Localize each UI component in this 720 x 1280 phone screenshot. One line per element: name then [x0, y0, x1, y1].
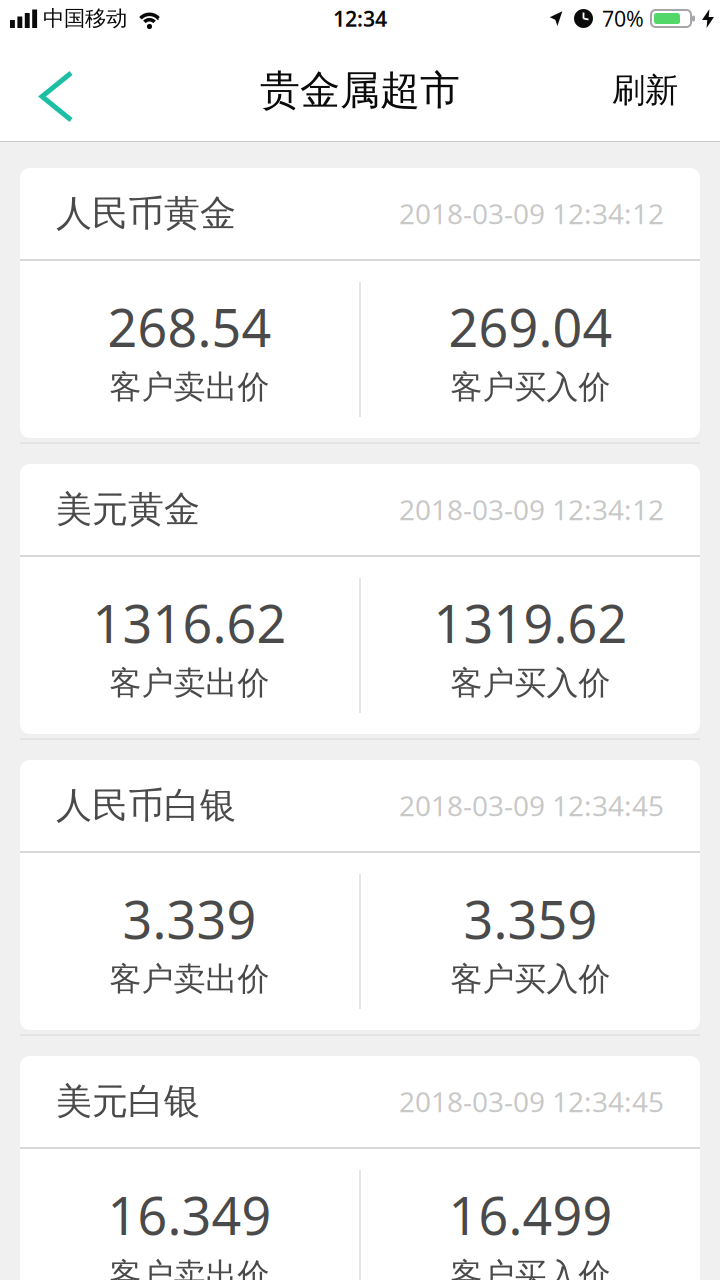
staticText: 2018-03-09 12:34:12 [399, 195, 664, 232]
staticText: 3.339 [122, 884, 256, 953]
staticText: 268.54 [107, 292, 271, 361]
staticText: 人民币黄金 [56, 191, 236, 236]
button[interactable]: 人民币黄金 [20, 168, 700, 438]
staticText: 刷新 [612, 70, 678, 111]
staticText: 客户卖出价 [109, 663, 269, 703]
button[interactable]: 美元黄金 [20, 464, 700, 734]
staticText: 1319.62 [433, 588, 627, 657]
staticText: 16.499 [448, 1180, 612, 1249]
staticText: 2018-03-09 12:34:45 [399, 1083, 664, 1120]
staticText: 12:34 [333, 4, 387, 33]
staticText: 269.04 [448, 292, 612, 361]
button[interactable]: 刷新 [592, 42, 720, 139]
staticText: 2018-03-09 12:34:45 [399, 787, 664, 824]
staticText: 客户买入价 [450, 367, 610, 407]
staticText: 美元黄金 [56, 487, 200, 532]
staticText: 客户卖出价 [109, 1255, 269, 1280]
staticText: 中国移动 [43, 5, 127, 32]
staticText: 美元白银 [56, 1079, 200, 1124]
button[interactable]: 人民币白银 [20, 760, 700, 1030]
staticText: 客户买入价 [450, 959, 610, 999]
staticText: 人民币白银 [56, 783, 236, 828]
staticText: 70% [602, 4, 644, 33]
staticText: 客户卖出价 [109, 959, 269, 999]
staticText: 客户买入价 [450, 1255, 610, 1280]
staticText: 1316.62 [92, 588, 286, 657]
staticText: 16.349 [107, 1180, 271, 1249]
staticText: 2018-03-09 12:34:12 [399, 491, 664, 528]
staticText: 贵金属超市 [260, 66, 460, 115]
staticText: 客户买入价 [450, 663, 610, 703]
staticText: 3.359 [463, 884, 597, 953]
staticText: 客户卖出价 [109, 367, 269, 407]
button[interactable]: 美元白银 [20, 1056, 700, 1280]
button[interactable]: Back [0, 43, 91, 138]
